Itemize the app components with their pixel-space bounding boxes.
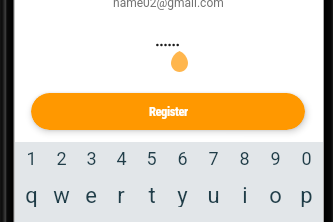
button[interactable]: u: [198, 183, 229, 207]
button[interactable]: 2: [46, 148, 76, 168]
button[interactable]: r: [106, 183, 136, 207]
button[interactable]: 5: [136, 148, 167, 168]
staticText: 6: [177, 148, 188, 168]
staticText: i: [242, 183, 248, 207]
button[interactable]: Register: [31, 93, 305, 130]
button[interactable]: t: [136, 183, 167, 207]
staticText: q: [25, 183, 38, 207]
button[interactable]: 7: [198, 148, 229, 168]
staticText: 0: [301, 148, 312, 168]
staticText: 9: [270, 148, 281, 168]
staticText: 2: [56, 148, 67, 168]
staticText: y: [177, 183, 188, 207]
staticText: 3: [86, 148, 97, 168]
staticText: p: [300, 183, 313, 207]
button[interactable]: 8: [229, 148, 260, 168]
button[interactable]: 3: [76, 148, 106, 168]
staticText: o: [269, 183, 282, 207]
staticText: 4: [116, 148, 127, 168]
staticText: u: [207, 183, 220, 207]
staticText: r: [117, 183, 125, 207]
button[interactable]: 9: [260, 148, 291, 168]
staticText: e: [85, 183, 97, 207]
button[interactable]: p: [291, 183, 322, 207]
staticText: t: [148, 183, 156, 207]
button[interactable]: q: [16, 183, 46, 207]
staticText: Register: [149, 104, 188, 119]
staticText: 8: [239, 148, 250, 168]
staticText: 5: [146, 148, 157, 168]
staticText: 7: [208, 148, 219, 168]
staticText: 1: [26, 148, 37, 168]
button[interactable]: 1: [16, 148, 46, 168]
button[interactable]: y: [167, 183, 198, 207]
button[interactable]: 4: [106, 148, 136, 168]
staticText: name02@gmail.com: [113, 0, 224, 10]
button[interactable]: i: [229, 183, 260, 207]
button[interactable]: 0: [291, 148, 322, 168]
button[interactable]: e: [76, 183, 106, 207]
other: Water drop: [171, 51, 188, 72]
button[interactable]: 6: [167, 148, 198, 168]
staticText: w: [53, 183, 70, 207]
button[interactable]: w: [46, 183, 76, 207]
button[interactable]: o: [260, 183, 291, 207]
